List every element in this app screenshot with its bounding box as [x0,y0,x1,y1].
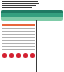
button[interactable]: icon [23,53,28,58]
button[interactable] [1,10,63,21]
button[interactable]: icon [16,53,21,58]
button[interactable]: icon [30,53,35,58]
button[interactable]: icon [9,53,14,58]
button[interactable]: icon [2,53,7,58]
